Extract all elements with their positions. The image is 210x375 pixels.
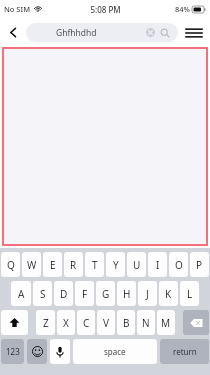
staticText: Y xyxy=(113,258,119,272)
button[interactable]: H xyxy=(117,281,136,306)
button[interactable]: N xyxy=(137,310,155,335)
button[interactable]: P xyxy=(190,252,209,277)
button[interactable]: Emoji xyxy=(27,339,47,364)
button[interactable]: Search xyxy=(160,28,170,38)
staticText: E xyxy=(50,258,56,272)
staticText: N xyxy=(142,316,150,330)
staticText: M xyxy=(161,316,171,330)
staticText: C xyxy=(83,316,90,330)
staticText: 123 xyxy=(6,346,20,357)
staticText: P xyxy=(196,258,203,272)
button[interactable]: Backspace xyxy=(183,310,209,335)
button[interactable]: G xyxy=(96,281,115,306)
staticText: X xyxy=(63,316,69,330)
button[interactable]: J xyxy=(138,281,157,306)
button[interactable]: L xyxy=(180,281,199,306)
staticText: V xyxy=(103,316,109,330)
button[interactable]: V xyxy=(97,310,115,335)
button[interactable]: F xyxy=(75,281,94,306)
button[interactable]: R xyxy=(64,252,83,277)
button[interactable]: S xyxy=(33,281,52,306)
staticText: Ghfhhdhd xyxy=(56,27,97,39)
staticText: U xyxy=(133,258,141,272)
staticText: Q xyxy=(7,258,15,272)
button[interactable]: M xyxy=(157,310,175,335)
button[interactable]: space xyxy=(73,339,157,364)
staticText: T xyxy=(92,258,98,272)
button[interactable]: B xyxy=(117,310,135,335)
button[interactable]: O xyxy=(169,252,188,277)
button[interactable]: C xyxy=(77,310,95,335)
staticText: I xyxy=(156,258,160,272)
staticText: G xyxy=(102,287,110,301)
button[interactable]: Ghfhhdhd xyxy=(26,23,178,42)
staticText: H xyxy=(123,287,131,301)
button[interactable]: Clear text xyxy=(146,28,155,37)
staticText: R xyxy=(70,258,77,272)
staticText: A xyxy=(18,287,25,301)
button[interactable]: Q xyxy=(1,252,20,277)
staticText: L xyxy=(187,287,193,301)
staticText: 84% xyxy=(175,4,190,14)
staticText: O xyxy=(175,258,183,272)
button[interactable]: return xyxy=(160,339,209,364)
button[interactable]: U xyxy=(127,252,146,277)
staticText: 5:08 PM xyxy=(90,4,121,15)
staticText: return xyxy=(173,346,197,357)
staticText: D xyxy=(60,287,68,301)
button[interactable]: Back xyxy=(0,18,26,47)
staticText: J xyxy=(146,287,149,301)
button[interactable]: W xyxy=(22,252,41,277)
button[interactable]: Shift xyxy=(1,310,28,335)
button[interactable]: Menu xyxy=(178,18,210,47)
button[interactable]: Y xyxy=(106,252,125,277)
button[interactable]: D xyxy=(54,281,73,306)
button[interactable]: Z xyxy=(36,310,55,335)
button[interactable]: I xyxy=(148,252,167,277)
button[interactable]: A xyxy=(11,281,31,306)
button[interactable]: Voice input xyxy=(50,339,70,364)
staticText: F xyxy=(82,287,88,301)
button[interactable]: X xyxy=(57,310,75,335)
staticText: Z xyxy=(43,316,49,330)
staticText: S xyxy=(40,287,46,301)
button[interactable]: 123 xyxy=(1,339,24,364)
staticText: No SIM xyxy=(4,4,31,14)
staticText: K xyxy=(165,287,172,301)
staticText: B xyxy=(123,316,130,330)
button[interactable]: K xyxy=(159,281,178,306)
staticText: space xyxy=(104,346,126,357)
button[interactable]: T xyxy=(85,252,104,277)
staticText: W xyxy=(27,258,37,272)
button[interactable]: E xyxy=(43,252,62,277)
